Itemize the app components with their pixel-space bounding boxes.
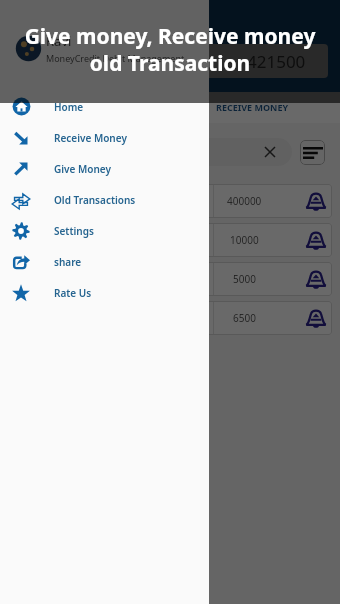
staticText: GIVE MONEY xyxy=(54,101,111,113)
staticText: Old Transactions xyxy=(54,193,136,207)
button[interactable]: Sort xyxy=(300,140,325,165)
staticText: Search Customer xyxy=(24,144,121,160)
staticText: Settings xyxy=(54,224,94,238)
button[interactable]: share xyxy=(0,246,209,277)
staticText: Home xyxy=(54,100,84,114)
button[interactable]: Remind xyxy=(303,227,329,253)
button[interactable]: Ramesh xyxy=(8,223,332,257)
button[interactable]: 421500 xyxy=(146,44,328,78)
button[interactable]: Remind xyxy=(303,305,329,331)
button[interactable]: Remind xyxy=(303,188,329,214)
staticText: 6500 xyxy=(233,311,256,325)
button[interactable]: Receive Money xyxy=(0,122,209,153)
button[interactable]: Sunil xyxy=(8,184,332,218)
staticText: RECEIVE MONEY xyxy=(216,101,289,113)
staticText: Ramesh xyxy=(18,233,56,247)
button[interactable]: Search Customer xyxy=(10,138,292,166)
staticText: 400000 xyxy=(227,194,262,208)
button[interactable]: Remind xyxy=(303,266,329,292)
staticText: Ravi xyxy=(46,32,72,50)
staticText: Sunil xyxy=(18,194,42,208)
button[interactable]: RECEIVE MONEY xyxy=(170,92,340,123)
button[interactable]: Give Money xyxy=(0,153,209,184)
staticText: Receive Money xyxy=(54,131,127,145)
staticText: 5000 xyxy=(233,272,256,286)
staticText: Anil xyxy=(18,272,36,286)
staticText: Give money, Receive money old Transactio… xyxy=(0,22,340,77)
staticText: MoneyCredit xyxy=(48,50,146,72)
staticText: Give Money xyxy=(54,162,111,176)
button[interactable]: Settings xyxy=(0,215,209,246)
button[interactable]: Vijay xyxy=(8,301,332,335)
button[interactable]: Home xyxy=(0,91,209,122)
staticText: MoneyCredit Debit Management xyxy=(46,52,185,64)
staticText: 10000 xyxy=(230,233,259,247)
button[interactable]: Old Transactions xyxy=(0,184,209,215)
button[interactable]: GIVE MONEY xyxy=(0,92,170,123)
button[interactable]: Anil xyxy=(8,262,332,296)
staticText: Rate Us xyxy=(54,286,92,300)
staticText: 421500 xyxy=(247,50,306,73)
button[interactable]: Rate Us xyxy=(0,277,209,308)
button[interactable]: Open navigation drawer xyxy=(0,37,48,85)
staticText: share xyxy=(54,255,82,269)
